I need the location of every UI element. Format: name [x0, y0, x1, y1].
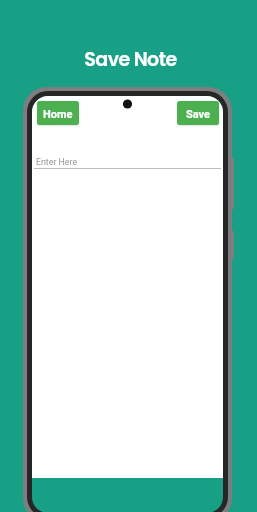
- button[interactable]: Save: [177, 101, 219, 125]
- staticText: Home: [43, 108, 73, 121]
- staticText: Enter Here: [36, 157, 78, 167]
- staticText: Save: [186, 108, 211, 121]
- button[interactable]: Home: [37, 101, 79, 125]
- staticText: Save Note: [2, 46, 257, 73]
